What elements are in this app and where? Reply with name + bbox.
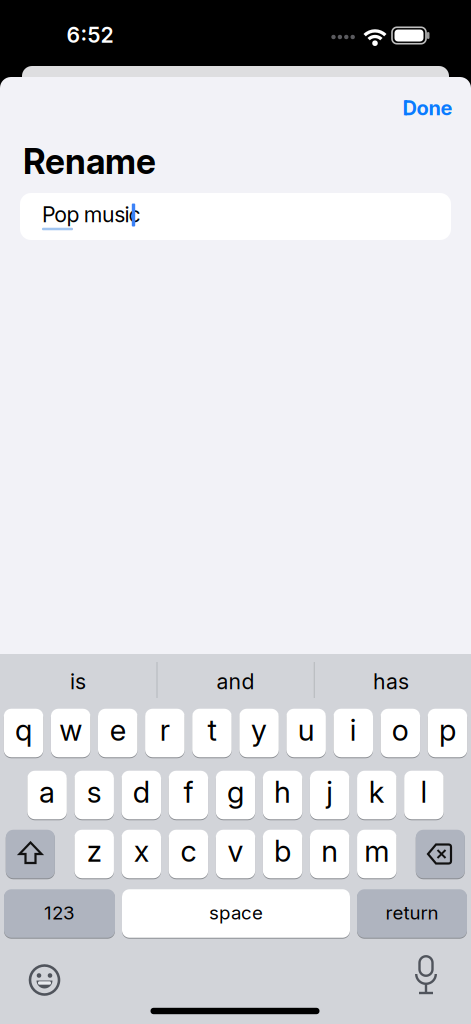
button[interactable]: return — [357, 888, 467, 939]
staticText: has — [373, 669, 409, 694]
button[interactable]: j — [310, 770, 349, 820]
button[interactable]: Dictate — [406, 953, 446, 997]
button[interactable]: f — [169, 770, 208, 820]
staticText: q — [15, 713, 32, 747]
button[interactable]: n — [310, 829, 349, 879]
button[interactable]: Shift — [6, 829, 55, 879]
staticText: n — [321, 834, 338, 868]
staticText: return — [385, 902, 438, 924]
button[interactable]: a — [27, 770, 67, 820]
staticText: l — [420, 775, 427, 809]
staticText: w — [59, 713, 82, 747]
staticText: and — [216, 669, 254, 694]
button[interactable]: o — [381, 708, 420, 758]
staticText: o — [392, 713, 409, 747]
staticText: d — [133, 775, 150, 809]
staticText: a — [39, 775, 55, 809]
button[interactable]: q — [4, 708, 43, 758]
staticText: f — [183, 775, 193, 809]
button[interactable]: c — [169, 829, 208, 879]
button[interactable]: space — [122, 888, 350, 939]
button[interactable]: w — [51, 708, 90, 758]
staticText: r — [160, 713, 170, 747]
staticText: 123 — [44, 902, 75, 924]
button[interactable]: g — [216, 770, 255, 820]
staticText: y — [251, 713, 267, 747]
button[interactable]: r — [145, 708, 185, 758]
button[interactable]: Playlist name — [20, 193, 451, 240]
button[interactable]: t — [192, 708, 232, 758]
button[interactable]: p — [428, 708, 467, 758]
button[interactable]: h — [263, 770, 302, 820]
button[interactable]: d — [122, 770, 161, 820]
button[interactable]: k — [357, 770, 397, 820]
staticText: v — [227, 834, 243, 868]
button[interactable]: m — [357, 829, 397, 879]
button[interactable]: Delete — [416, 829, 465, 879]
staticText: Done — [402, 96, 452, 120]
button[interactable]: Done — [392, 88, 462, 128]
staticText: e — [110, 713, 126, 747]
button[interactable]: l — [404, 770, 444, 820]
button[interactable]: 123 — [4, 888, 115, 939]
button[interactable]: v — [216, 829, 255, 879]
button[interactable]: y — [239, 708, 279, 758]
staticText: x — [134, 834, 149, 868]
button[interactable]: is — [3, 656, 153, 706]
staticText: m — [364, 834, 389, 868]
staticText: t — [207, 713, 216, 747]
staticText: i — [350, 713, 357, 747]
staticText: is — [70, 669, 86, 694]
button[interactable]: b — [263, 829, 302, 879]
staticText: space — [209, 902, 263, 924]
button[interactable]: s — [74, 770, 114, 820]
staticText: 6:52 — [66, 22, 113, 48]
staticText: j — [326, 775, 333, 809]
button[interactable]: has — [316, 656, 466, 706]
staticText: Pop music — [42, 202, 141, 227]
staticText: h — [274, 775, 291, 809]
staticText: s — [87, 775, 102, 809]
button[interactable]: x — [122, 829, 161, 879]
button[interactable]: e — [98, 708, 137, 758]
button[interactable]: i — [333, 708, 373, 758]
staticText: c — [180, 834, 196, 868]
staticText: p — [439, 713, 456, 747]
button[interactable]: and — [160, 656, 310, 706]
button[interactable]: z — [74, 829, 114, 879]
button[interactable]: u — [286, 708, 326, 758]
staticText: k — [369, 775, 385, 809]
staticText: b — [274, 834, 291, 868]
staticText: u — [298, 713, 315, 747]
button[interactable]: Emoji — [24, 960, 64, 1000]
staticText: z — [87, 834, 102, 868]
staticText: Rename — [23, 141, 156, 182]
staticText: g — [227, 775, 244, 809]
